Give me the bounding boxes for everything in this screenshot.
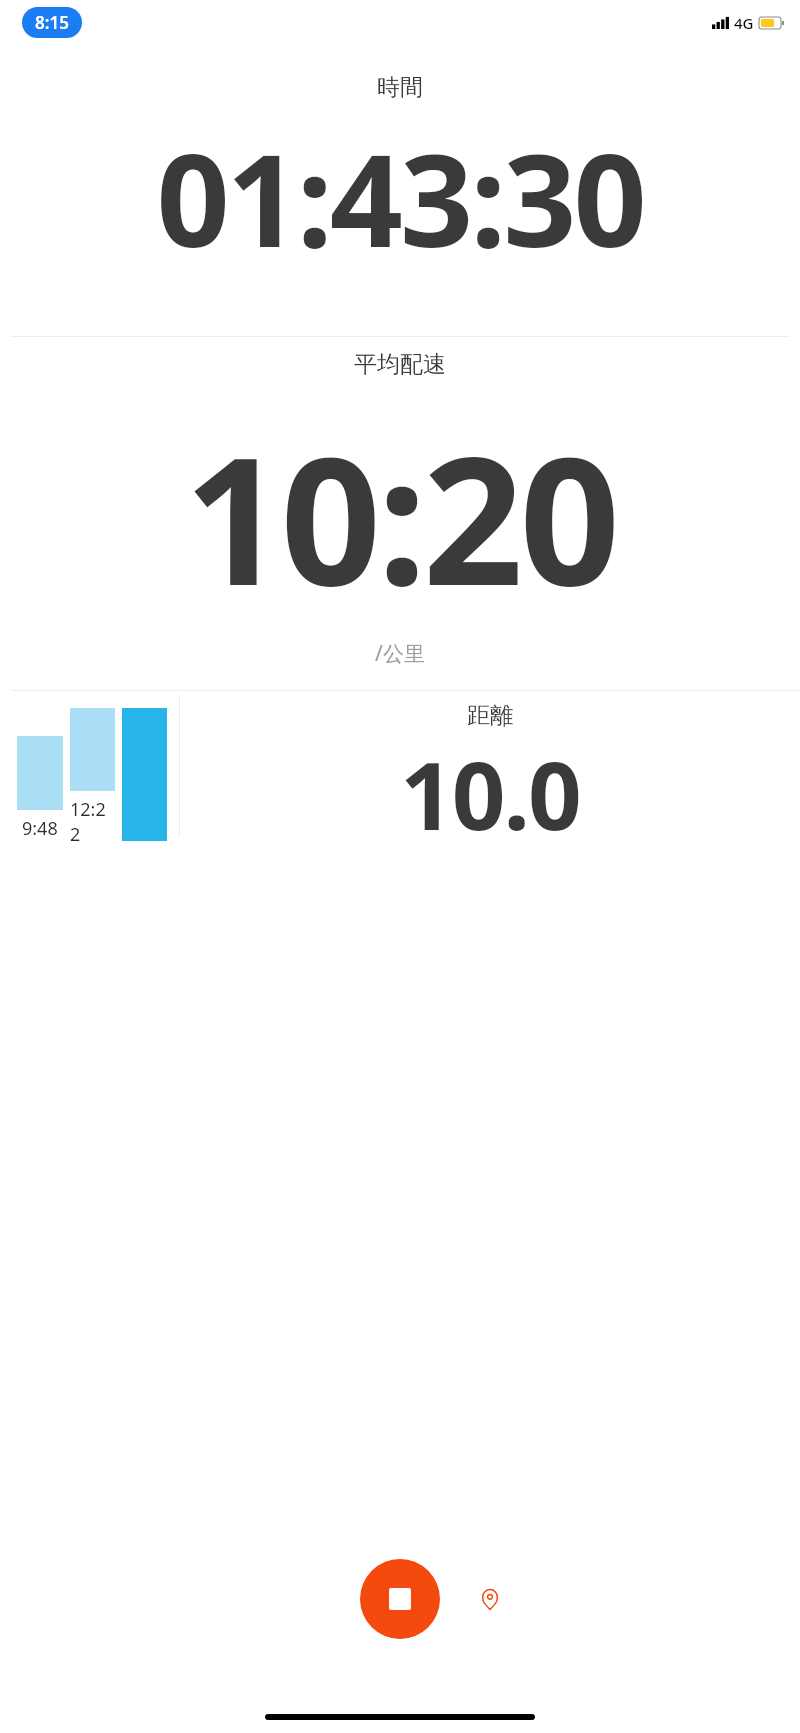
staticText: 10.0 (400, 730, 580, 841)
staticText: 10:20 (0, 397, 800, 637)
staticText: 12:22 (70, 797, 115, 841)
button[interactable]: Stop (360, 1559, 440, 1639)
staticText: 距離 (467, 701, 513, 730)
staticText: 時間 (0, 73, 800, 102)
staticText: 8:15 (35, 11, 69, 34)
staticText: /公里 (0, 639, 800, 668)
staticText: 4G (734, 13, 754, 33)
button[interactable]: Location (469, 1578, 511, 1620)
staticText: 平均配速 (0, 350, 800, 379)
staticText: 01:43:30 (0, 110, 800, 284)
staticText: 9:48 (22, 816, 58, 841)
